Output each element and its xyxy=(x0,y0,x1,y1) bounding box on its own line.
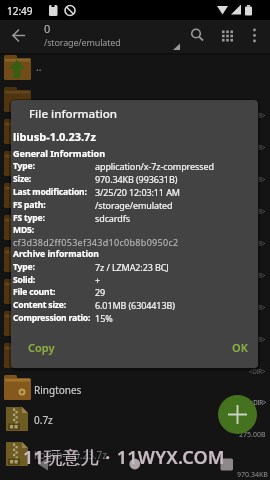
staticText: Last modification: xyxy=(13,186,87,198)
staticText: Type: xyxy=(13,160,35,172)
staticText: 0 xyxy=(44,21,51,36)
staticText: /storage/emulated xyxy=(95,199,173,211)
staticText: <DIR> xyxy=(249,303,266,311)
staticText: 275.00B xyxy=(239,430,266,440)
staticText: 29 xyxy=(95,286,106,298)
staticText: sdcardfs xyxy=(95,212,130,224)
staticText: FS type: xyxy=(13,212,45,224)
staticText: Ringtones xyxy=(34,383,82,397)
staticText: Copy xyxy=(28,340,55,355)
staticText: 12:49 xyxy=(7,4,33,18)
staticText: 7z / LZMA2:23 BCJ xyxy=(95,261,169,273)
staticText: 11玩意儿・11WYX.COM xyxy=(23,445,225,470)
staticText: .. xyxy=(36,60,42,74)
button[interactable]: Copy xyxy=(16,334,66,360)
staticText: Archive information xyxy=(13,248,99,260)
button[interactable] xyxy=(90,456,180,480)
staticText: OK xyxy=(232,340,248,355)
staticText: Solid: xyxy=(13,274,35,286)
staticText: File count: xyxy=(13,286,56,298)
staticText: Type: xyxy=(13,261,35,273)
staticText: FS path: xyxy=(13,199,46,211)
staticText: 15% xyxy=(95,312,113,324)
staticText: <DIR> xyxy=(250,398,267,406)
staticText: MD5: xyxy=(13,224,34,236)
staticText: <DIR> xyxy=(249,207,266,215)
staticText: <DIR> xyxy=(249,175,266,183)
button[interactable] xyxy=(0,456,90,480)
staticText: 3/25/20 12:03:11 AM xyxy=(95,186,180,198)
staticText: 6.01MB (6304413B) xyxy=(95,299,175,311)
staticText: /storage/emulated xyxy=(44,36,121,48)
button[interactable] xyxy=(0,404,270,436)
button[interactable] xyxy=(0,372,270,404)
staticText: Size: xyxy=(13,173,32,185)
button[interactable] xyxy=(218,395,257,434)
staticText: Content size: xyxy=(13,299,66,311)
staticText: File information xyxy=(29,106,118,122)
staticText: <DIR> xyxy=(249,239,266,247)
staticText: <DIR> xyxy=(249,111,266,119)
staticText: 970.34KB (993631B) xyxy=(95,173,178,185)
staticText: libusb-1.0.23.7z xyxy=(13,129,96,144)
staticText: <DIR> xyxy=(249,271,266,279)
staticText: application/x-7z-compressed xyxy=(95,160,214,172)
staticText: General Information xyxy=(13,147,106,159)
staticText: + xyxy=(95,274,101,286)
staticText: <DIR> xyxy=(249,143,266,151)
staticText: cf3d38d2ff053ef343d10c0b8b0950c2 xyxy=(13,236,179,248)
staticText: <DIR> xyxy=(249,335,266,343)
staticText: libusb-1.0.23.7z xyxy=(34,448,107,462)
staticText: Compression ratio: xyxy=(13,312,91,324)
staticText: <DIR> xyxy=(249,367,266,375)
staticText: 0.7z xyxy=(34,413,53,427)
staticText: 970.34KB xyxy=(237,470,268,480)
button[interactable] xyxy=(180,456,270,480)
button[interactable]: File information xyxy=(11,100,258,368)
button[interactable]: OK xyxy=(222,334,258,360)
